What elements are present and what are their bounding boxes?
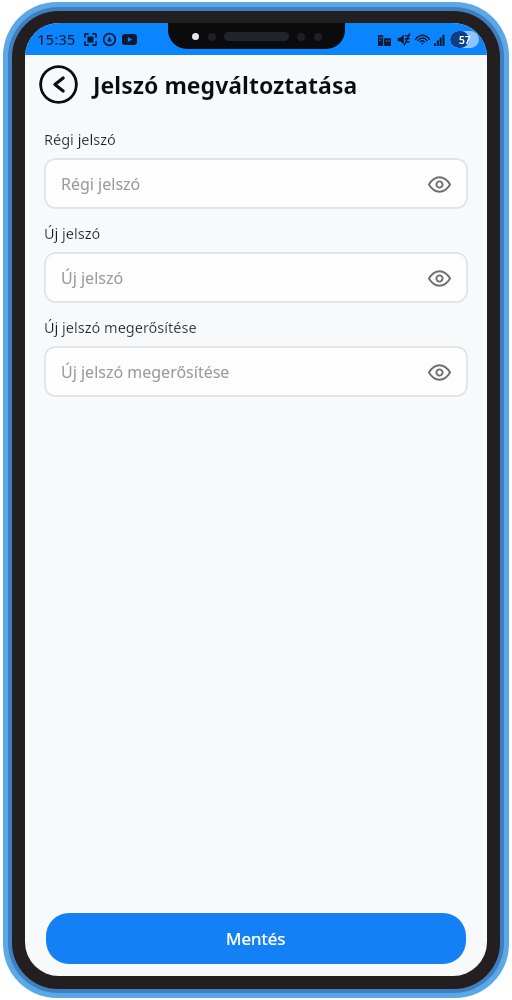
button[interactable]: Régi jelszó [44, 158, 468, 209]
staticText: Új jelszó megerősítése [44, 317, 197, 337]
staticText: 15:35 [37, 29, 76, 49]
staticText: Új jelszó megerősítése [61, 361, 230, 383]
staticText: Mentés [226, 927, 286, 950]
button[interactable]: Show password [425, 170, 453, 198]
button[interactable]: Show password [425, 358, 453, 386]
button[interactable]: Back [39, 65, 78, 104]
staticText: Új jelszó [61, 267, 124, 289]
button[interactable]: Új jelszó [44, 252, 468, 303]
staticText: Új jelszó [44, 223, 101, 243]
button[interactable]: Új jelszó megerősítése [44, 346, 468, 397]
button[interactable]: Mentés [46, 913, 466, 964]
staticText: Jelszó megváltoztatása [93, 69, 358, 100]
button[interactable]: Show password [425, 264, 453, 292]
staticText: 57 [459, 33, 471, 47]
staticText: Régi jelszó [44, 129, 116, 149]
staticText: Régi jelszó [61, 173, 141, 195]
